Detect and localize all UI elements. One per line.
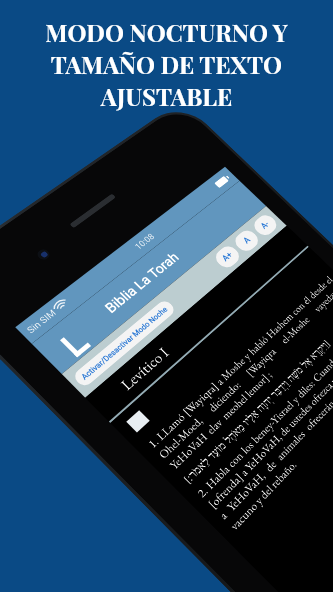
staticText: Biblia La Torah: [102, 249, 182, 316]
button[interactable]: A-: [250, 212, 280, 239]
staticText: Levítico I: [116, 343, 174, 395]
staticText: A: [241, 235, 253, 246]
button[interactable]: A+: [212, 243, 243, 271]
staticText: A+: [220, 250, 235, 264]
staticText: [וַיִּקְרָא אֶל מֹשֶׁה וַיְדַבֵּר יְהוָה…: [180, 336, 333, 486]
other: Logo: [60, 329, 91, 357]
staticText: 1. LLamó [Wayiqra] a Moshe y habló Hashe…: [145, 273, 333, 472]
staticText: MODO NOCTURNO Y TAMAÑO DE TEXTO AJUSTABL…: [0, 16, 333, 112]
staticText: Activar/Desactivar Modo Noche: [79, 305, 170, 381]
button[interactable]: Activar/Desactivar Modo Noche: [71, 298, 177, 389]
button[interactable]: A: [231, 227, 262, 254]
staticText: Sin SIM: [25, 308, 59, 336]
staticText: 2. Habla con los beney-Yisrael y diles: …: [194, 315, 333, 533]
staticText: 10:08: [133, 231, 157, 252]
staticText: A-: [259, 219, 272, 231]
